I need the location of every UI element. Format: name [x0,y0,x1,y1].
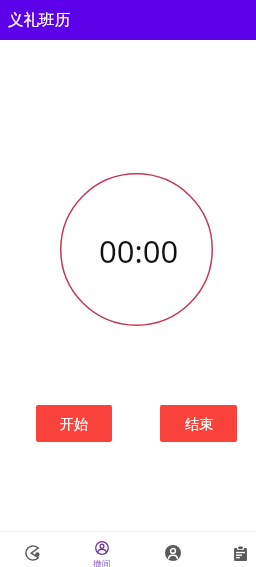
button[interactable]: 统计 [6,532,59,567]
button[interactable]: 开始 [36,405,112,442]
button[interactable]: 撤间 [75,532,128,567]
staticText: 结束 [185,416,213,434]
staticText: 撤间 [93,558,111,567]
staticText: 00:00 [99,230,179,272]
button[interactable]: 列表 [214,532,256,567]
staticText: 义礼班历 [8,10,70,30]
button[interactable]: 我的 [146,532,199,567]
staticText: 开始 [60,416,88,434]
button[interactable]: 结束 [160,405,237,442]
